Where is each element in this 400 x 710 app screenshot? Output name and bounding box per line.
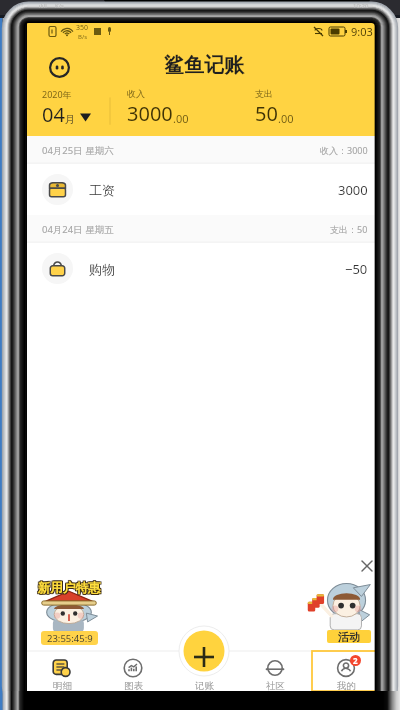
button[interactable]: 图表	[97, 651, 168, 691]
staticText: 04月25日 星期六	[42, 144, 114, 157]
button[interactable]: Close	[360, 559, 374, 573]
staticText: 收入	[127, 88, 145, 99]
staticText: 3000	[127, 100, 173, 127]
button[interactable]: 明细	[27, 651, 97, 691]
staticText: K/s	[55, 2, 64, 10]
staticText: 活动	[338, 630, 360, 643]
staticText: .00	[278, 111, 294, 126]
staticText: 新用户特惠	[37, 579, 100, 595]
staticText: 23:55:45:9	[47, 632, 93, 645]
staticText: 收入：3000	[320, 144, 368, 156]
staticText: 新用户特惠	[37, 581, 100, 597]
staticText: 新用户特惠	[38, 580, 101, 596]
staticText: 2020年	[42, 88, 72, 100]
staticText: 新用户特惠	[38, 581, 101, 597]
button[interactable]: 记账	[168, 651, 239, 691]
staticText: 2	[353, 655, 358, 666]
button[interactable]: 社区	[239, 651, 310, 691]
staticText: 新用户特惠	[39, 580, 102, 596]
staticText: 04月24日 星期五	[42, 223, 114, 236]
staticText: 新用户特惠	[38, 579, 101, 595]
button[interactable]: 活动	[327, 630, 371, 643]
staticText: 新用户特惠	[37, 580, 100, 596]
staticText: 鲨鱼记账	[164, 53, 244, 78]
button[interactable]: 购物	[27, 243, 381, 294]
staticText: 社区	[266, 680, 285, 691]
staticText: −50	[345, 260, 368, 278]
staticText: 月	[65, 113, 75, 126]
staticText: 支出：50	[330, 223, 368, 235]
staticText: 图表	[124, 680, 143, 691]
staticText: ılıll	[39, 2, 47, 10]
staticText: 04	[42, 101, 65, 128]
staticText: 9:03	[351, 24, 373, 39]
staticText: 50	[255, 100, 278, 127]
button[interactable]: 工资	[27, 164, 381, 215]
button[interactable]: 新用户特惠	[34, 579, 104, 645]
staticText: 我的	[337, 680, 356, 691]
button[interactable]: Add record	[178, 631, 230, 671]
button[interactable]: Avatar	[49, 57, 70, 78]
staticText: 工资	[89, 182, 115, 198]
staticText: 明细	[53, 680, 72, 691]
staticText: 3000	[338, 181, 368, 199]
staticText: 新用户特惠	[39, 581, 102, 597]
staticText: .00	[173, 111, 189, 126]
staticText: 新用户特惠	[39, 579, 102, 595]
staticText: 支出	[255, 88, 273, 99]
staticText: 10:20	[353, 2, 369, 10]
staticText: 350	[76, 23, 89, 33]
staticText: 记账	[195, 680, 214, 691]
button[interactable]: 2	[310, 651, 381, 691]
staticText: 购物	[89, 261, 115, 277]
staticText: B/s	[78, 33, 88, 41]
